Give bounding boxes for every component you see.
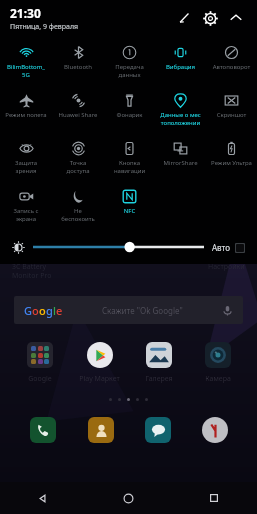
button[interactable]: Скриншот bbox=[206, 90, 257, 138]
staticText: Защита зрения bbox=[0, 159, 52, 175]
button[interactable]: Защита зрения bbox=[0, 138, 52, 186]
button[interactable]: Huawei Share bbox=[52, 90, 104, 138]
staticText: Фонарик bbox=[104, 111, 155, 119]
staticText: e bbox=[56, 303, 63, 318]
staticText: o bbox=[32, 303, 39, 318]
button[interactable]: Back bbox=[0, 482, 85, 514]
button[interactable]: Запись с экрана bbox=[0, 186, 52, 234]
staticText: Скриншот bbox=[206, 111, 257, 119]
staticText: Авто bbox=[212, 242, 230, 253]
button[interactable] bbox=[33, 240, 204, 254]
staticText: Кнопка навигации bbox=[104, 159, 155, 175]
staticText: Передача данных bbox=[104, 63, 155, 79]
button[interactable]: Settings bbox=[197, 5, 223, 31]
staticText: MirrorShare bbox=[155, 159, 206, 167]
button[interactable]: Home bbox=[85, 482, 171, 514]
button[interactable]: Кнопка навигации bbox=[104, 138, 155, 186]
other: Voice search bbox=[222, 305, 233, 316]
button[interactable]: Режим Ультра bbox=[206, 138, 257, 186]
staticText: Автоповорот bbox=[206, 63, 257, 71]
staticText: Google bbox=[28, 374, 52, 384]
staticText: Скажите "Ok Google" bbox=[102, 305, 183, 316]
button[interactable]: Вибрация bbox=[155, 42, 206, 90]
staticText: Галерея bbox=[145, 374, 173, 384]
button[interactable]: Режим полета bbox=[0, 90, 52, 138]
staticText: NFC bbox=[104, 207, 155, 215]
staticText: 3C Battery Monitor Pro bbox=[12, 262, 52, 280]
button[interactable]: Автоповорот bbox=[206, 42, 257, 90]
button[interactable]: Recents bbox=[171, 482, 257, 514]
staticText: Запись с экрана bbox=[0, 207, 52, 223]
button[interactable]: Google bbox=[10, 340, 70, 384]
button[interactable]: Авто bbox=[212, 242, 245, 253]
staticText: Play Маркет bbox=[79, 374, 120, 384]
staticText: l bbox=[53, 303, 56, 318]
button[interactable]: BilimBottom_ 5G bbox=[0, 42, 52, 90]
staticText: 21:30 bbox=[10, 5, 41, 21]
button[interactable]: Передача данных bbox=[104, 42, 155, 90]
button[interactable]: Phone bbox=[14, 413, 72, 447]
button[interactable]: MirrorShare bbox=[155, 138, 206, 186]
button[interactable]: Не беспокоить bbox=[52, 186, 104, 234]
button[interactable]: Play Маркет bbox=[70, 340, 129, 384]
button[interactable]: Messages bbox=[129, 413, 186, 447]
staticText: Huawei Share bbox=[52, 111, 104, 119]
staticText: G bbox=[24, 303, 32, 318]
button[interactable]: Галерея bbox=[129, 340, 188, 384]
staticText: g bbox=[46, 303, 53, 318]
button[interactable]: NFC bbox=[104, 186, 155, 234]
staticText: Точка доступа bbox=[52, 159, 104, 175]
button[interactable]: G bbox=[14, 296, 243, 324]
button[interactable]: Точка доступа bbox=[52, 138, 104, 186]
staticText: Пятница, 9 февраля bbox=[10, 22, 79, 32]
button[interactable]: Фонарик bbox=[104, 90, 155, 138]
staticText: Не беспокоить bbox=[52, 207, 104, 223]
staticText: o bbox=[39, 303, 46, 318]
staticText: Настройки bbox=[208, 262, 245, 272]
button[interactable]: Данные о мес тоположении bbox=[155, 90, 206, 138]
button[interactable]: Contacts bbox=[72, 413, 129, 447]
staticText: Данные о мес тоположении bbox=[155, 111, 206, 127]
staticText: Камера bbox=[205, 374, 231, 384]
button[interactable]: Yandex bbox=[186, 413, 243, 447]
button[interactable]: Edit bbox=[171, 5, 197, 31]
button[interactable]: Камера bbox=[188, 340, 247, 384]
staticText: BilimBottom_ 5G bbox=[0, 63, 52, 79]
button[interactable]: Bluetooth bbox=[52, 42, 104, 90]
staticText: Режим полета bbox=[0, 111, 52, 119]
staticText: Режим Ультра bbox=[206, 159, 257, 167]
staticText: Bluetooth bbox=[52, 63, 104, 71]
staticText: Вибрация bbox=[155, 63, 206, 71]
button[interactable]: Collapse bbox=[223, 5, 249, 31]
